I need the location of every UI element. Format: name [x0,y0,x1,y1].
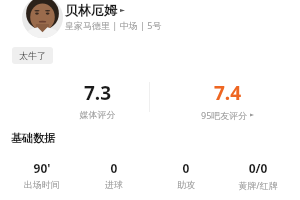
staticText: 基础数据 [11,131,55,145]
staticText: 95吧友评分 [201,109,248,121]
staticText: 媒体评分 [55,109,140,120]
button[interactable]: 0 [80,160,148,190]
button[interactable]: 0/0 [224,160,292,191]
staticText: 贝林厄姆 [65,2,117,18]
staticText: 0 [80,160,148,176]
staticText: 0 [152,160,220,176]
staticText: 0/0 [224,160,292,176]
staticText: 90' [8,160,76,176]
staticText: 7.3 [55,80,140,106]
button[interactable]: 贝林厄姆 [65,2,125,18]
staticText: 助攻 [152,179,220,190]
staticText: 出场时间 [8,179,76,190]
staticText: 进球 [80,179,148,190]
button[interactable]: Player avatar [22,0,63,38]
button[interactable]: 0 [152,160,220,190]
button[interactable]: 7.4 [185,80,270,121]
staticText: 皇家马德里 | 中场 | 5号 [65,19,162,31]
button[interactable]: 7.3 [55,80,140,120]
staticText: 太牛了 [19,50,46,61]
button[interactable]: 90' [8,160,76,190]
staticText: 7.4 [185,80,270,106]
staticText: 黄牌/红牌 [224,179,292,191]
button[interactable]: 太牛了 [12,47,53,64]
